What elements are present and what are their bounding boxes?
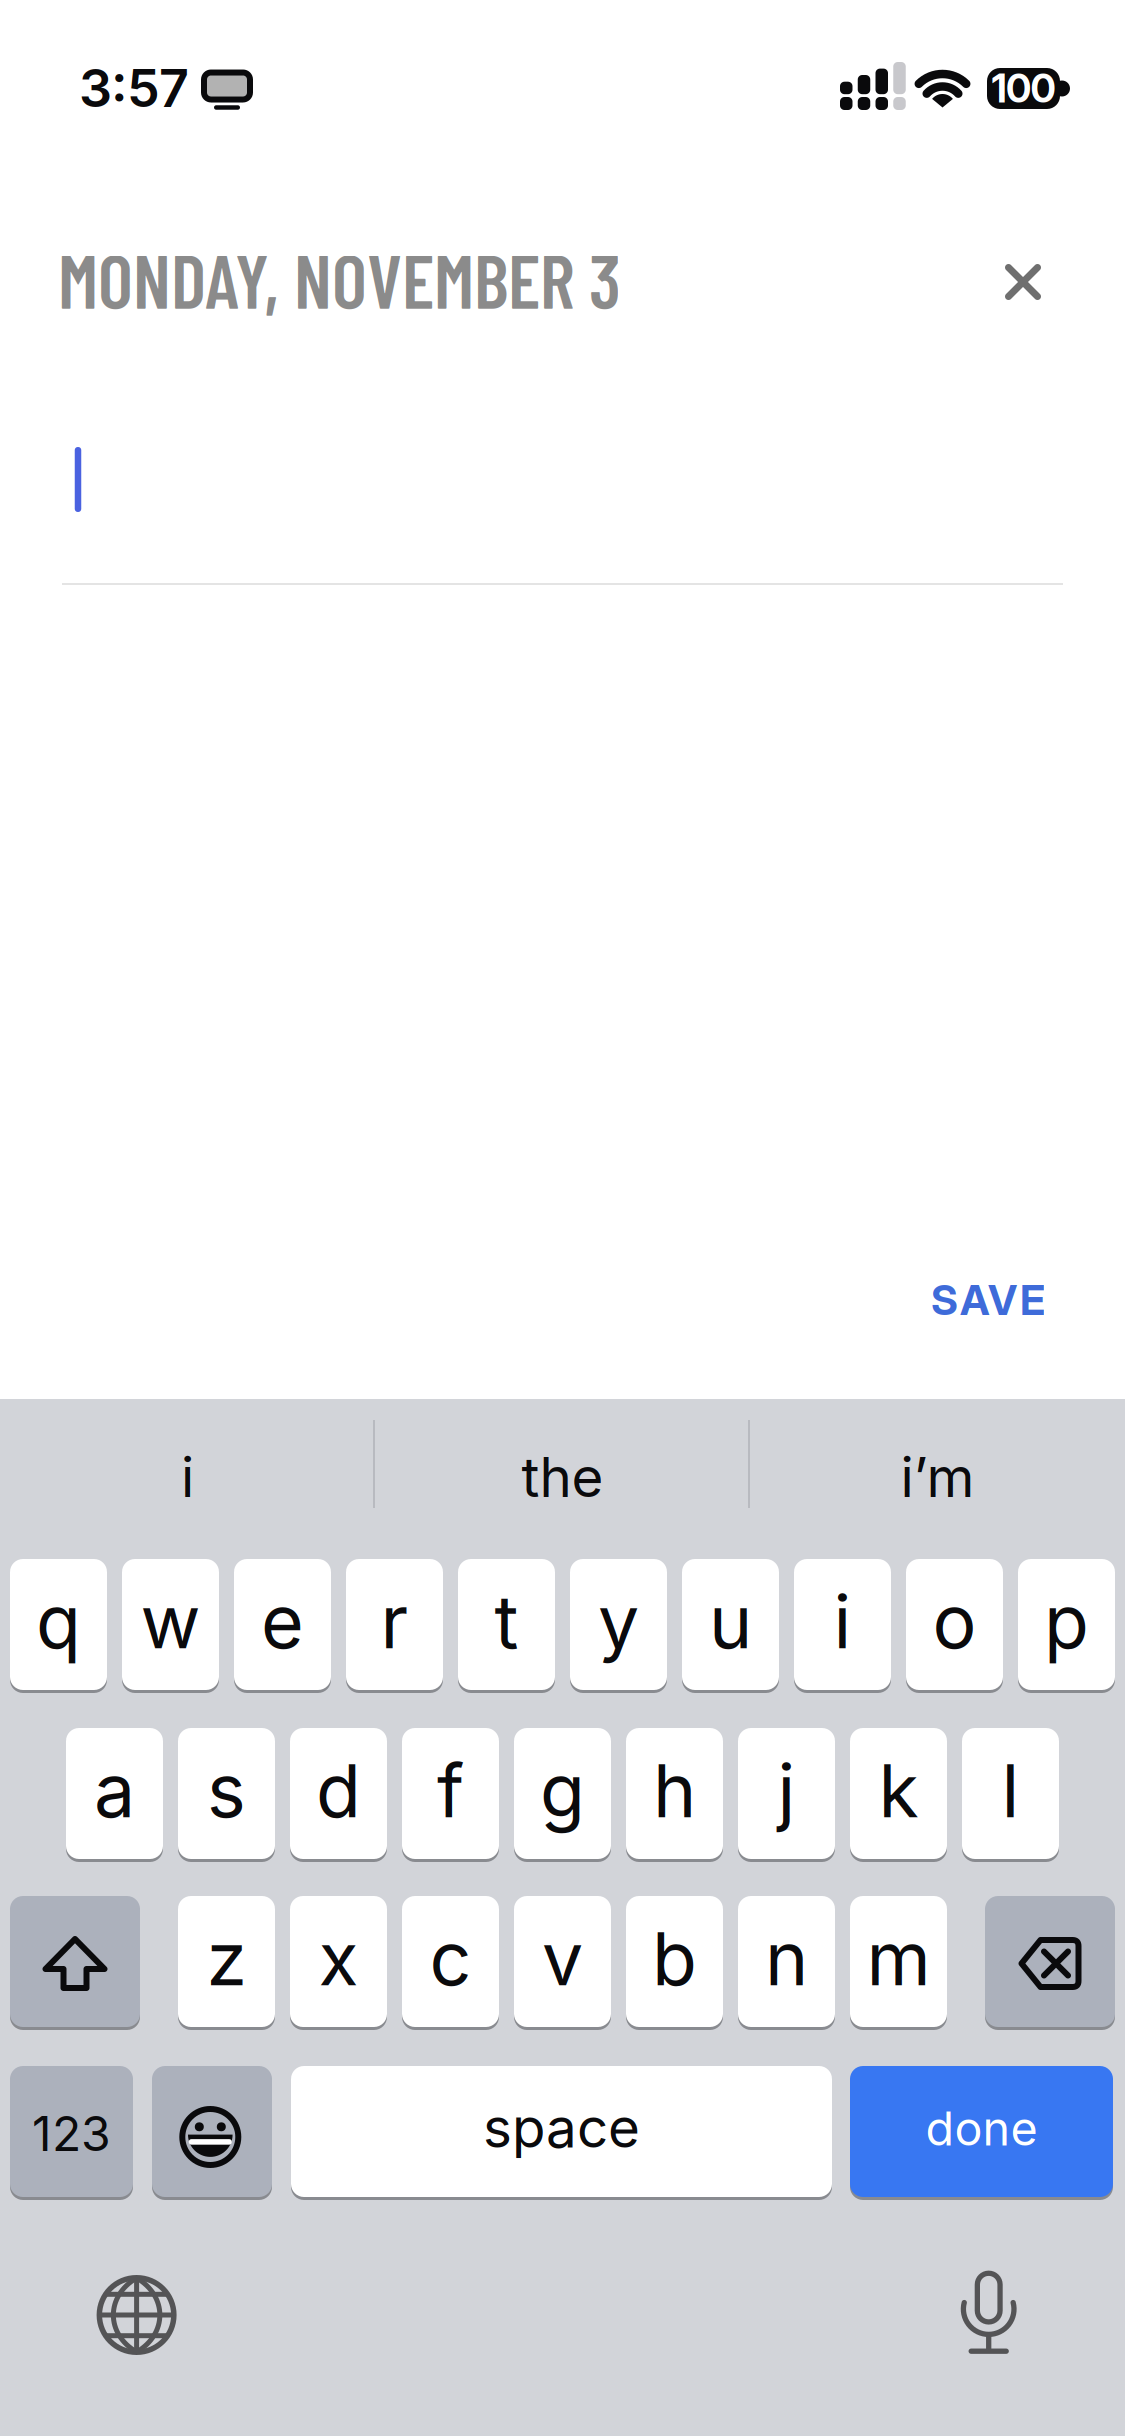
button[interactable]: e bbox=[234, 1559, 331, 1690]
button[interactable]: i bbox=[17, 1417, 357, 1537]
staticText: h bbox=[653, 1746, 696, 1835]
button[interactable]: space bbox=[291, 2066, 832, 2197]
staticText: y bbox=[598, 1577, 639, 1666]
button[interactable]: u bbox=[682, 1559, 779, 1690]
button[interactable] bbox=[959, 2270, 1019, 2354]
staticText: a bbox=[94, 1746, 135, 1835]
button[interactable]: d bbox=[290, 1728, 387, 1859]
staticText: q bbox=[36, 1577, 81, 1666]
button[interactable]: the bbox=[392, 1417, 732, 1537]
staticText: b bbox=[652, 1914, 697, 2003]
button[interactable]: p bbox=[1018, 1559, 1115, 1690]
staticText: 100 bbox=[991, 65, 1055, 112]
button[interactable] bbox=[983, 242, 1063, 322]
staticText: c bbox=[429, 1914, 471, 2003]
staticText: e bbox=[261, 1577, 304, 1666]
button[interactable] bbox=[985, 1896, 1115, 2027]
staticText: f bbox=[437, 1746, 464, 1835]
staticText: w bbox=[140, 1577, 200, 1666]
button[interactable]: SAVE bbox=[888, 1260, 1088, 1340]
staticText: space bbox=[483, 2094, 640, 2160]
staticText: t bbox=[494, 1577, 518, 1666]
staticText: i bbox=[833, 1577, 851, 1666]
staticText: v bbox=[542, 1914, 583, 2003]
button[interactable]: f bbox=[402, 1728, 499, 1859]
staticText: i’m bbox=[900, 1444, 974, 1510]
staticText: z bbox=[206, 1914, 246, 2003]
button[interactable]: x bbox=[290, 1896, 387, 2027]
button[interactable]: n bbox=[738, 1896, 835, 2027]
button[interactable]: a bbox=[66, 1728, 163, 1859]
staticText: 3:57 bbox=[79, 56, 189, 119]
button[interactable]: b bbox=[626, 1896, 723, 2027]
staticText: done bbox=[925, 2100, 1037, 2157]
staticText: g bbox=[540, 1746, 585, 1835]
button[interactable] bbox=[97, 2275, 177, 2355]
staticText: l bbox=[1001, 1746, 1019, 1835]
button[interactable]: w bbox=[122, 1559, 219, 1690]
button[interactable]: 123 bbox=[10, 2066, 133, 2197]
staticText: MONDAY, NOVEMBER 3 bbox=[58, 234, 621, 324]
button[interactable]: i’m bbox=[767, 1417, 1107, 1537]
button[interactable]: g bbox=[514, 1728, 611, 1859]
button[interactable]: o bbox=[906, 1559, 1003, 1690]
staticText: o bbox=[932, 1577, 976, 1666]
staticText: the bbox=[521, 1444, 603, 1510]
button[interactable] bbox=[152, 2066, 272, 2197]
button[interactable]: y bbox=[570, 1559, 667, 1690]
button[interactable]: z bbox=[178, 1896, 275, 2027]
button[interactable]: j bbox=[738, 1728, 835, 1859]
button[interactable]: m bbox=[850, 1896, 947, 2027]
staticText: m bbox=[866, 1914, 930, 2003]
staticText: r bbox=[380, 1577, 408, 1666]
staticText: SAVE bbox=[931, 1275, 1045, 1325]
staticText: j bbox=[777, 1746, 795, 1835]
staticText: u bbox=[709, 1577, 752, 1666]
button[interactable]: q bbox=[10, 1559, 107, 1690]
staticText: k bbox=[878, 1746, 918, 1835]
staticText: s bbox=[207, 1746, 246, 1835]
button[interactable] bbox=[10, 1896, 140, 2027]
button[interactable]: v bbox=[514, 1896, 611, 2027]
button[interactable]: h bbox=[626, 1728, 723, 1859]
button[interactable]: t bbox=[458, 1559, 555, 1690]
button[interactable]: i bbox=[794, 1559, 891, 1690]
button[interactable]: done bbox=[850, 2066, 1113, 2197]
staticText: 123 bbox=[32, 2104, 111, 2163]
button[interactable]: l bbox=[962, 1728, 1059, 1859]
button[interactable]: s bbox=[178, 1728, 275, 1859]
staticText: p bbox=[1044, 1577, 1089, 1666]
staticText: x bbox=[318, 1914, 358, 2003]
staticText: i bbox=[181, 1444, 194, 1510]
staticText: n bbox=[765, 1914, 808, 2003]
staticText: d bbox=[316, 1746, 361, 1835]
button[interactable]: c bbox=[402, 1896, 499, 2027]
button[interactable]: r bbox=[346, 1559, 443, 1690]
button[interactable]: k bbox=[850, 1728, 947, 1859]
